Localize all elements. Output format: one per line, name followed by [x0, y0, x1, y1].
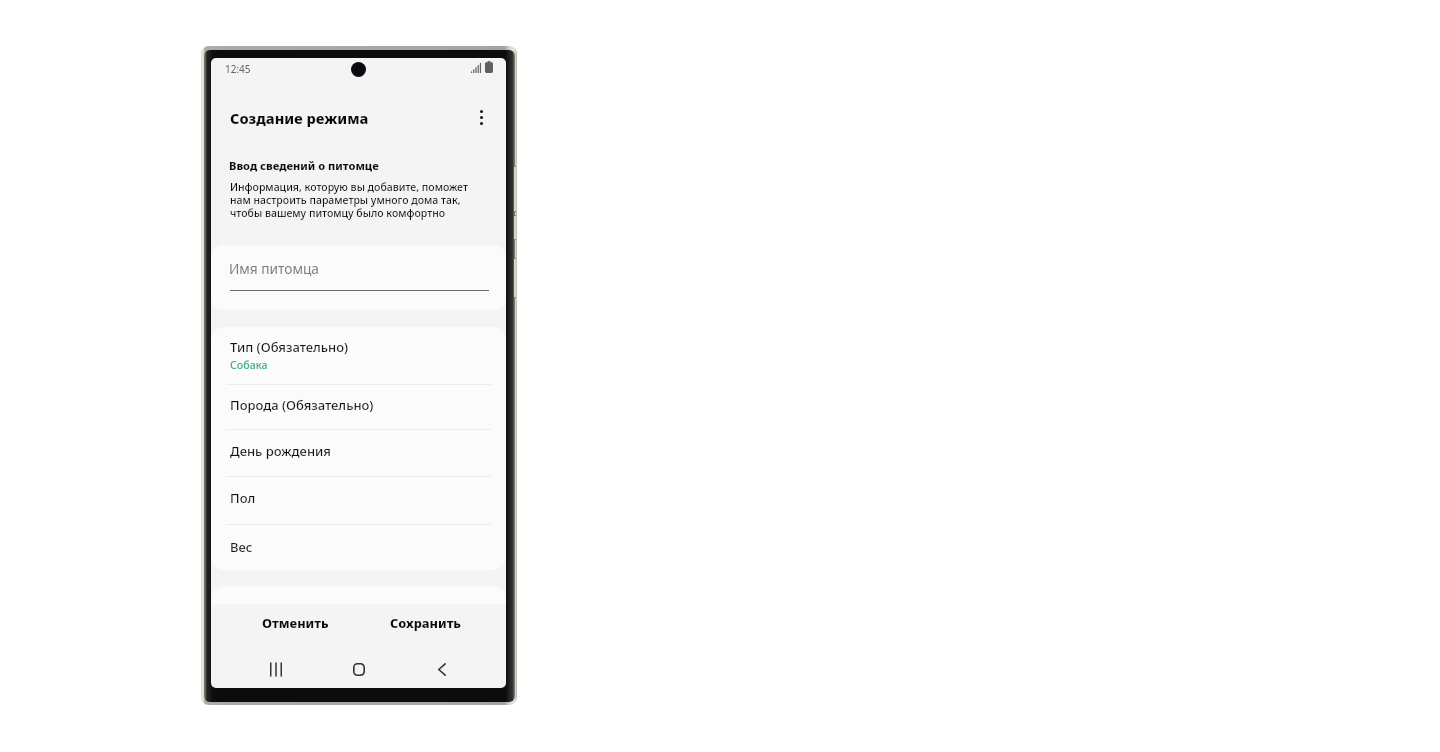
button[interactable]: День рождения [211, 430, 506, 477]
staticText: Сохранить [390, 614, 461, 631]
staticText: 12:45 [225, 62, 251, 76]
button[interactable]: Сохранить [377, 604, 473, 640]
button[interactable]: Имя питомца [211, 245, 506, 310]
button[interactable]: More options [466, 102, 496, 132]
button[interactable]: Recents [254, 647, 298, 688]
staticText: Имя питомца [229, 259, 319, 278]
button[interactable]: Порода (Обязательно) [211, 385, 506, 430]
button[interactable]: Пол [211, 477, 506, 525]
staticText: Отменить [262, 614, 329, 631]
button[interactable]: Отменить [247, 604, 343, 640]
button[interactable]: Вес [211, 525, 506, 570]
staticText: День рождения [230, 442, 331, 460]
staticText: Информация, которую вы добавите, поможет… [230, 180, 468, 220]
staticText: Вес [230, 538, 253, 556]
staticText: Тип (Обязательно) [230, 338, 349, 356]
staticText: Ввод сведений о питомце [229, 158, 379, 173]
button[interactable]: Тип (Обязательно) [211, 327, 506, 385]
staticText: Пол [230, 489, 256, 507]
button[interactable]: Back [420, 647, 464, 688]
staticText: Порода (Обязательно) [230, 396, 374, 414]
staticText: Собака [230, 358, 268, 373]
button[interactable]: Home [337, 647, 381, 688]
staticText: Создание режима [230, 108, 369, 128]
